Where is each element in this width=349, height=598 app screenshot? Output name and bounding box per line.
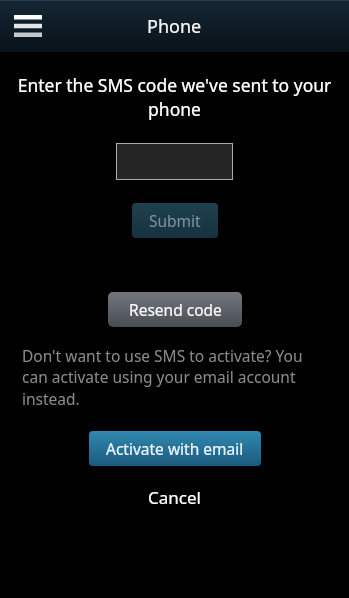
staticText: Enter the SMS code we've sent to your ph…	[6, 73, 343, 121]
staticText: Don't want to use SMS to activate? You c…	[22, 345, 323, 410]
button[interactable]: Open navigation menu	[8, 6, 48, 46]
staticText: Cancel	[148, 486, 201, 509]
staticText: Submit	[149, 210, 201, 231]
button[interactable]: Activate with email	[89, 431, 261, 466]
button[interactable]	[116, 143, 233, 180]
staticText: Resend code	[129, 299, 222, 320]
staticText: Phone	[147, 14, 202, 39]
button[interactable]: Cancel	[128, 480, 221, 515]
button[interactable]: Resend code	[108, 292, 242, 327]
staticText: Activate with email	[106, 438, 244, 459]
button[interactable]: Submit	[132, 203, 218, 238]
